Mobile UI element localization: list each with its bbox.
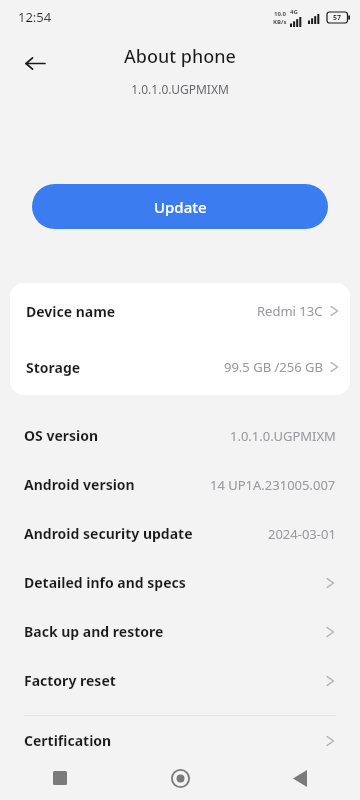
button[interactable]: Android version <box>0 460 360 509</box>
button[interactable]: Certification <box>0 716 360 765</box>
button[interactable]: Storage <box>10 339 350 395</box>
staticText: 4G <box>290 8 298 16</box>
staticText: Storage <box>26 358 81 377</box>
staticText: 14 UP1A.231005.007 <box>210 476 336 494</box>
button[interactable]: Back <box>240 756 360 800</box>
staticText: Update <box>154 197 207 217</box>
staticText: OS version <box>24 426 99 445</box>
button[interactable]: Update <box>32 184 328 229</box>
staticText: Factory reset <box>24 671 116 690</box>
staticText: 99.5 GB /256 GB <box>224 358 323 376</box>
staticText: 1.0.1.0.UGPMIXM <box>230 427 336 445</box>
staticText: 1.0.1.0.UGPMIXM <box>131 81 229 97</box>
staticText: 12:54 <box>18 8 52 26</box>
button[interactable]: Detailed info and specs <box>0 558 360 607</box>
staticText: 2024-03-01 <box>268 525 336 543</box>
staticText: Back up and restore <box>24 622 164 641</box>
button[interactable]: Recents <box>0 756 120 800</box>
staticText: Android security update <box>24 524 193 543</box>
staticText: Android version <box>24 475 135 494</box>
staticText: Device name <box>26 302 116 321</box>
staticText: 57 <box>333 13 342 23</box>
button[interactable]: Android security update <box>0 509 360 558</box>
staticText: KB/s <box>273 18 287 26</box>
staticText: Certification <box>24 731 112 750</box>
staticText: About phone <box>124 44 236 69</box>
staticText: Redmi 13C <box>257 302 323 320</box>
button[interactable]: Factory reset <box>0 656 360 705</box>
staticText: Detailed info and specs <box>24 573 186 592</box>
button[interactable]: Back <box>14 42 56 84</box>
button[interactable]: Back up and restore <box>0 607 360 656</box>
button[interactable]: Home <box>120 756 240 800</box>
staticText: 10.0 <box>274 10 286 18</box>
button[interactable]: Device name <box>10 283 350 339</box>
button[interactable]: OS version <box>0 411 360 460</box>
